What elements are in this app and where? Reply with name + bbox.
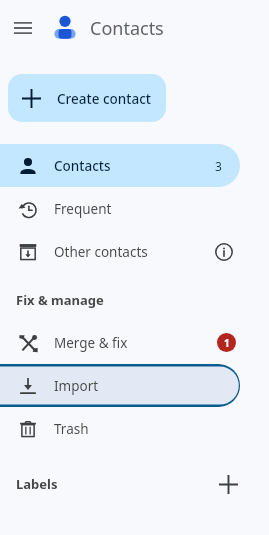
button[interactable]: Trash [0, 407, 240, 450]
staticText: Trash [54, 420, 89, 438]
staticText: Contacts [54, 157, 111, 175]
button[interactable]: Frequent [0, 187, 240, 230]
staticText: Merge & fix [54, 334, 128, 352]
button[interactable]: About other contacts [209, 237, 239, 267]
staticText: 1 [224, 336, 230, 350]
staticText: Contacts [90, 16, 164, 41]
button[interactable]: Open navigation menu [6, 11, 40, 45]
button[interactable]: Import [0, 364, 240, 407]
button[interactable]: Merge & fix [0, 321, 240, 364]
staticText: Fix & manage [16, 291, 104, 309]
staticText: Labels [16, 475, 58, 493]
staticText: Import [54, 377, 99, 395]
staticText: Frequent [54, 200, 112, 218]
staticText: Create contact [57, 90, 151, 108]
button[interactable]: Create label [209, 465, 247, 503]
staticText: 3 [215, 158, 222, 174]
button[interactable]: Other contacts [0, 230, 240, 273]
button[interactable]: Create contact [8, 74, 166, 122]
button[interactable]: Contacts [0, 144, 240, 187]
staticText: Other contacts [54, 243, 148, 261]
